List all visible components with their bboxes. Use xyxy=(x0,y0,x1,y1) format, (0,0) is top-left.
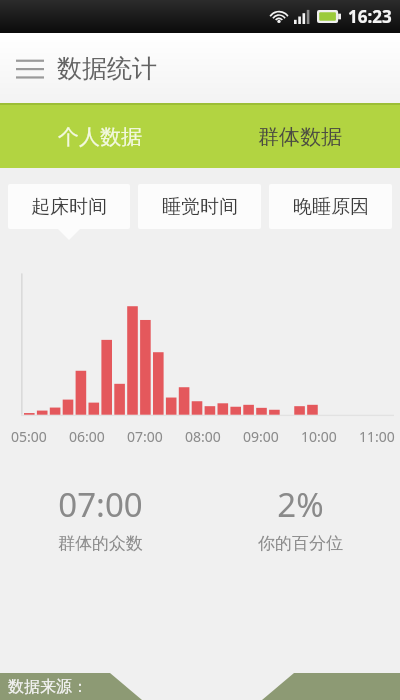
staticText: 你的百分位 xyxy=(258,533,343,554)
button[interactable]: 晚睡原因 xyxy=(269,184,392,229)
staticText: 数据统计 xyxy=(57,53,157,84)
staticText: 数据来源： xyxy=(8,677,88,697)
staticText: 晚睡原因 xyxy=(293,195,369,219)
staticText: 起床时间 xyxy=(31,195,107,219)
button[interactable]: 个人数据 xyxy=(0,105,200,168)
staticText: 2% xyxy=(277,482,324,527)
staticText: 个人数据 xyxy=(58,124,142,150)
staticText: 群体的众数 xyxy=(58,533,143,554)
staticText: 06:00 xyxy=(69,427,105,446)
staticText: 10:00 xyxy=(301,427,337,446)
button[interactable]: Menu xyxy=(10,51,50,85)
staticText: 07:00 xyxy=(127,427,163,446)
staticText: 群体数据 xyxy=(258,124,342,150)
staticText: 05:00 xyxy=(11,427,47,446)
button[interactable]: 睡觉时间 xyxy=(138,184,261,229)
staticText: 08:00 xyxy=(185,427,221,446)
button[interactable]: 起床时间 xyxy=(8,184,130,229)
staticText: 16:23 xyxy=(348,5,392,28)
staticText: 09:00 xyxy=(243,427,279,446)
button[interactable]: 群体数据 xyxy=(200,105,400,168)
staticText: 睡觉时间 xyxy=(162,195,238,219)
staticText: 07:00 xyxy=(58,482,143,527)
staticText: 11:00 xyxy=(359,427,395,446)
